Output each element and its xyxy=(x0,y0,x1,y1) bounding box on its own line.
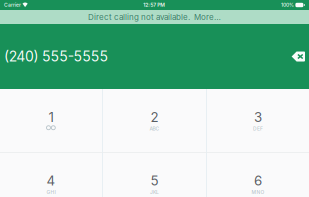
staticText: JKL xyxy=(150,189,159,195)
button[interactable]: 2 xyxy=(103,89,206,152)
staticText: Carrier xyxy=(4,2,21,8)
staticText: 100% xyxy=(281,2,294,8)
staticText: 1 xyxy=(48,109,53,125)
staticText: Direct calling not available. More… xyxy=(88,12,221,22)
staticText: 12:57 PM xyxy=(143,2,165,8)
button[interactable]: 5 xyxy=(103,153,206,197)
staticText: 6 xyxy=(254,173,262,189)
staticText: 2 xyxy=(150,109,158,125)
button[interactable]: 1 xyxy=(0,89,102,152)
button[interactable]: 4 xyxy=(0,153,102,197)
staticText: ABC xyxy=(149,126,159,132)
staticText: 5 xyxy=(150,173,158,189)
button[interactable]: Direct calling not available. More… xyxy=(0,10,309,24)
staticText: 3 xyxy=(254,109,262,125)
staticText: (240) 555-5555 xyxy=(4,48,108,65)
staticText: MNO xyxy=(252,189,265,195)
staticText: 4 xyxy=(46,173,55,189)
staticText: DEF xyxy=(253,126,263,132)
button[interactable]: 6 xyxy=(207,153,309,197)
button[interactable]: 3 xyxy=(207,89,309,152)
staticText: GHI xyxy=(46,189,55,195)
button[interactable]: Delete xyxy=(292,51,305,61)
